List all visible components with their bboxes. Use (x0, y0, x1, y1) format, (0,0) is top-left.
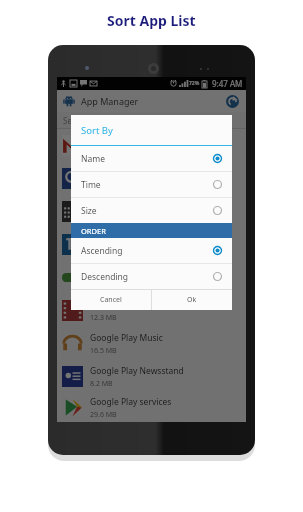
staticText: Cancel (100, 295, 122, 305)
staticText: Descending (81, 271, 129, 283)
button[interactable]: Google (57, 162, 246, 195)
button[interactable]: Ok (152, 290, 232, 310)
staticText: Google Calendar (90, 200, 157, 212)
staticText: Google Play Music (90, 332, 163, 344)
staticText: Sort App List (107, 11, 196, 30)
button[interactable]: Refresh (224, 93, 240, 109)
button[interactable]: Cancel (71, 290, 151, 310)
button[interactable]: Google Calendar (57, 195, 246, 228)
staticText: 16.5 MB (90, 346, 117, 356)
staticText: Ascending (81, 245, 123, 257)
staticText: Google (90, 167, 119, 179)
staticText: 18.7 MB (90, 280, 117, 290)
staticText: Name (81, 153, 105, 165)
staticText: 21.0 MB (90, 247, 117, 257)
staticText: Time (81, 179, 101, 191)
button[interactable]: Google Play Games (57, 261, 246, 294)
staticText: Ok (187, 295, 197, 305)
button[interactable]: Google Play services (57, 393, 246, 422)
staticText: App Manager (81, 95, 139, 107)
button[interactable]: Google Play Newsstand (57, 360, 246, 393)
button[interactable]: Google Play Movies (57, 294, 246, 327)
staticText: Google Drive (90, 233, 142, 245)
button[interactable]: Ascending (71, 238, 232, 263)
staticText: 8.2 MB (90, 379, 113, 389)
button[interactable]: Size (71, 198, 232, 223)
staticText: Sort By (81, 124, 113, 137)
staticText: 9:47 AM (212, 78, 243, 89)
staticText: Google Play Games (90, 266, 168, 278)
staticText: Gmail (90, 134, 114, 146)
staticText: 11.1 MB (90, 148, 117, 158)
staticText: Google Play services (90, 396, 172, 408)
staticText: Google Play Newsstand (90, 365, 184, 377)
staticText: 9.4 MB (90, 181, 113, 191)
staticText: Google Play Movies (90, 299, 168, 311)
staticText: 12.3 MB (90, 313, 117, 323)
button[interactable]: Time (71, 172, 232, 197)
staticText: 29.6 MB (90, 410, 117, 420)
button[interactable]: Google Play Music (57, 327, 246, 360)
button[interactable]: Google Drive (57, 228, 246, 261)
staticText: Search App.. (63, 115, 110, 126)
button[interactable]: Search App.. (57, 112, 246, 128)
button[interactable]: Gmail (57, 129, 246, 162)
staticText: Size (81, 205, 97, 217)
staticText: 72% (189, 80, 200, 87)
button[interactable]: Name (71, 146, 232, 171)
staticText: ORDER (81, 226, 106, 236)
button[interactable]: Descending (71, 264, 232, 289)
staticText: 14.2 MB (90, 214, 117, 224)
